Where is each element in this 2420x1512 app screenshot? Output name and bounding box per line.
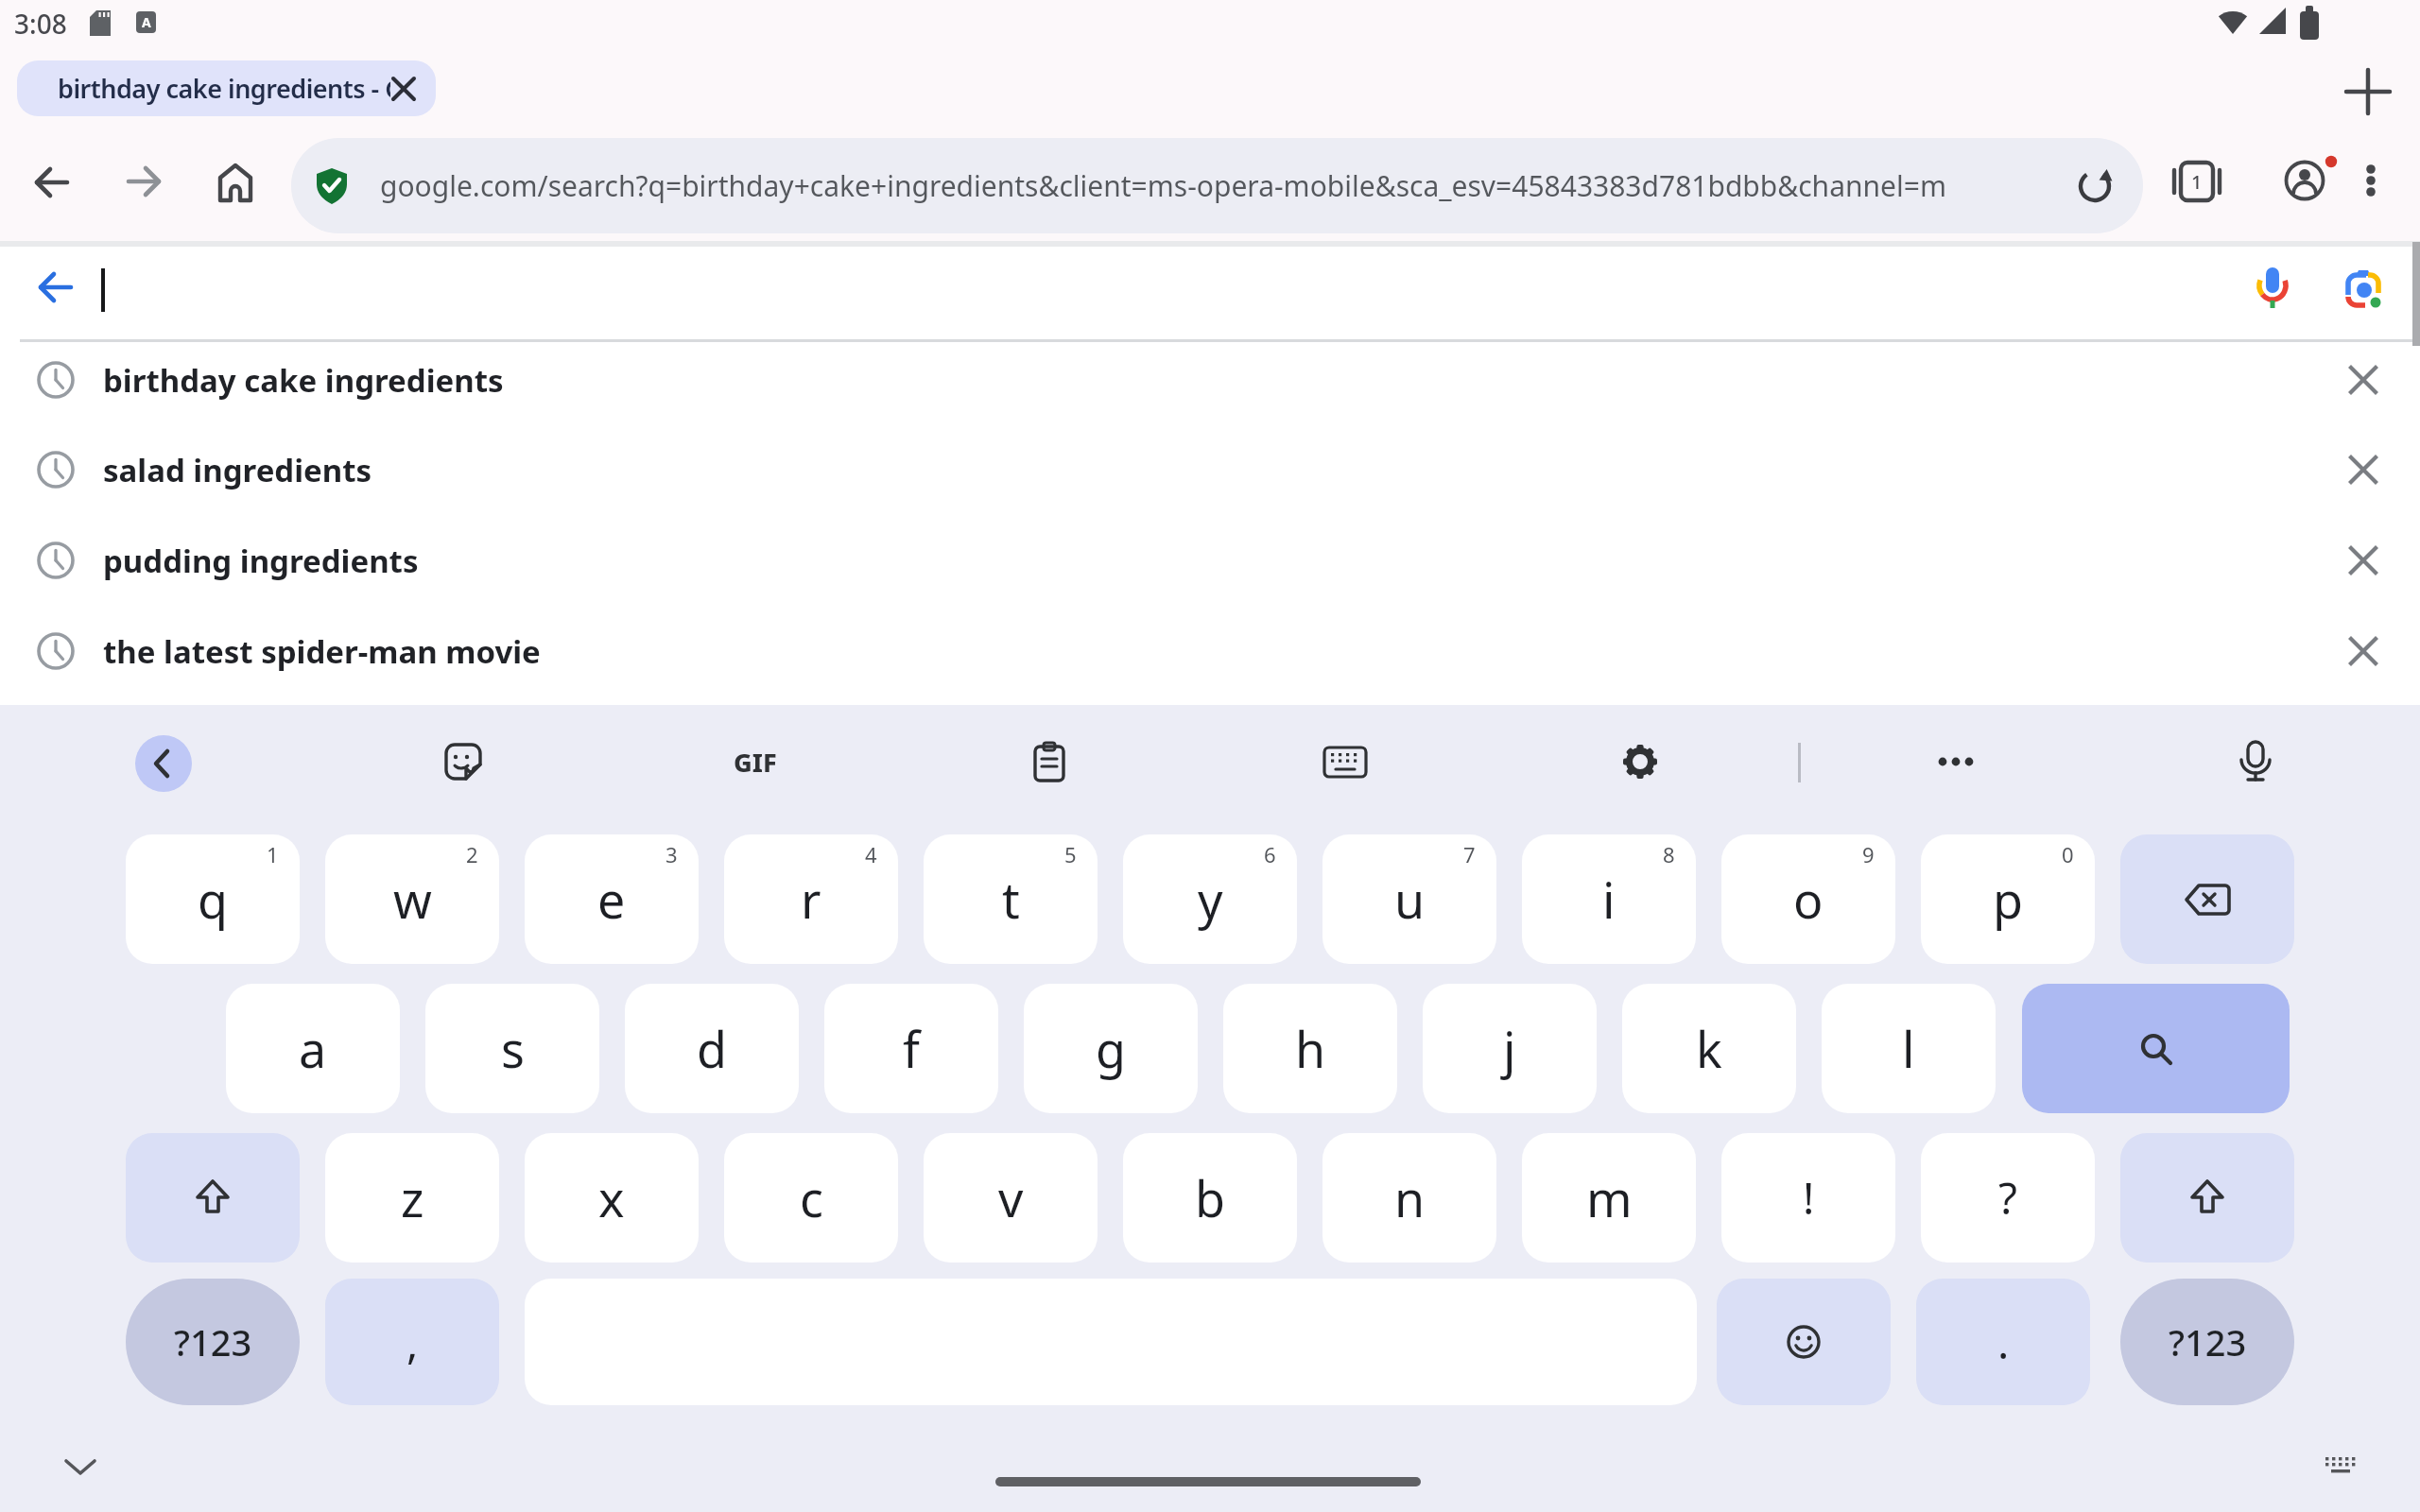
button[interactable]: ?	[1921, 1133, 2095, 1263]
button[interactable]	[14, 145, 90, 220]
staticText: ,	[406, 1313, 419, 1372]
staticText: k	[1696, 1015, 1722, 1082]
staticText: x	[598, 1164, 625, 1231]
staticText: i	[1602, 866, 1616, 933]
staticText: 7	[1463, 840, 1476, 868]
staticText: birthday cake ingredients	[103, 359, 504, 402]
button[interactable]: .	[1916, 1279, 2090, 1405]
staticText: 3	[665, 840, 678, 868]
button[interactable]	[1922, 728, 1990, 796]
button[interactable]: t	[924, 834, 1098, 964]
button[interactable]	[2022, 984, 2290, 1113]
button[interactable]	[135, 735, 192, 792]
button[interactable]: birthday cake ingredients - G	[17, 60, 436, 116]
staticText: 4	[865, 840, 877, 868]
button[interactable]: w	[325, 834, 499, 964]
button[interactable]: v	[924, 1133, 1098, 1263]
staticText: pudding ingredients	[103, 540, 419, 582]
button[interactable]	[2271, 146, 2339, 215]
button[interactable]: the latest spider-man movie	[0, 606, 2412, 696]
button[interactable]: n	[1322, 1133, 1496, 1263]
button[interactable]: a	[226, 984, 400, 1113]
button[interactable]	[2240, 255, 2305, 321]
button[interactable]: r	[724, 834, 898, 964]
button[interactable]	[52, 1438, 109, 1495]
button[interactable]: f	[824, 984, 998, 1113]
button[interactable]: k	[1622, 984, 1796, 1113]
button[interactable]	[2312, 1438, 2369, 1495]
staticText: birthday cake ingredients - G	[58, 71, 390, 106]
button[interactable]: e	[525, 834, 699, 964]
button[interactable]: salad ingredients	[0, 424, 2412, 515]
button[interactable]: p	[1921, 834, 2095, 964]
button[interactable]	[1015, 728, 1083, 796]
button[interactable]	[2335, 59, 2401, 125]
button[interactable]: 1	[2163, 147, 2231, 215]
button[interactable]: ,	[325, 1279, 499, 1405]
staticText: l	[1902, 1015, 1915, 1082]
button[interactable]: b	[1123, 1133, 1297, 1263]
button[interactable]	[429, 728, 497, 796]
button[interactable]	[19, 250, 93, 324]
button[interactable]: o	[1721, 834, 1895, 964]
button[interactable]: s	[425, 984, 599, 1113]
button[interactable]: z	[325, 1133, 499, 1263]
staticText: !	[1803, 1168, 1815, 1228]
button[interactable]: ?123	[2120, 1279, 2294, 1405]
staticText: 0	[2062, 840, 2074, 868]
button[interactable]	[2329, 617, 2397, 685]
button[interactable]: d	[625, 984, 799, 1113]
button[interactable]: g	[1024, 984, 1198, 1113]
button[interactable]: i	[1522, 834, 1696, 964]
button[interactable]	[2329, 346, 2397, 414]
staticText: c	[800, 1164, 823, 1231]
button[interactable]: x	[525, 1133, 699, 1263]
staticText: r	[801, 866, 821, 933]
staticText: n	[1394, 1164, 1426, 1231]
button[interactable]	[2120, 834, 2294, 964]
button[interactable]	[2331, 255, 2395, 321]
button[interactable]: l	[1822, 984, 1996, 1113]
staticText: 6	[1264, 840, 1276, 868]
staticText: d	[697, 1015, 727, 1082]
button[interactable]	[995, 1477, 1421, 1486]
button[interactable]	[198, 146, 273, 221]
button[interactable]	[106, 144, 181, 219]
button[interactable]	[1311, 728, 1379, 796]
button[interactable]: u	[1322, 834, 1496, 964]
button[interactable]: j	[1423, 984, 1597, 1113]
button[interactable]	[2221, 728, 2290, 796]
button[interactable]	[2120, 1133, 2294, 1263]
button[interactable]	[2342, 146, 2399, 215]
button[interactable]: !	[1721, 1133, 1895, 1263]
staticText: m	[1586, 1164, 1633, 1231]
button[interactable]: c	[724, 1133, 898, 1263]
staticText: p	[1993, 866, 2023, 933]
button[interactable]: ?123	[126, 1279, 300, 1405]
staticText: 1	[2191, 169, 2203, 195]
staticText: a	[299, 1015, 327, 1082]
staticText: GIF	[734, 745, 777, 780]
button[interactable]: birthday cake ingredients	[0, 335, 2412, 425]
button[interactable]: y	[1123, 834, 1297, 964]
staticText: w	[393, 866, 432, 933]
button[interactable]	[126, 1133, 300, 1263]
staticText: q	[198, 866, 228, 933]
button[interactable]: m	[1522, 1133, 1696, 1263]
button[interactable]: q	[126, 834, 300, 964]
button[interactable]: GIF	[721, 728, 789, 796]
button[interactable]: pudding ingredients	[0, 515, 2412, 606]
button[interactable]	[1606, 728, 1674, 796]
staticText: ?123	[2169, 1317, 2247, 1366]
button[interactable]: google.com/search?q=birthday+cake+ingred…	[291, 138, 2143, 233]
staticText: ?123	[174, 1317, 252, 1366]
button[interactable]	[2065, 156, 2125, 216]
staticText: 3:08	[14, 6, 67, 42]
button[interactable]	[1717, 1279, 1891, 1405]
staticText: j	[1503, 1015, 1516, 1082]
button[interactable]: h	[1223, 984, 1397, 1113]
button[interactable]	[2329, 436, 2397, 504]
staticText: .	[1997, 1313, 2010, 1372]
button[interactable]	[2329, 526, 2397, 594]
